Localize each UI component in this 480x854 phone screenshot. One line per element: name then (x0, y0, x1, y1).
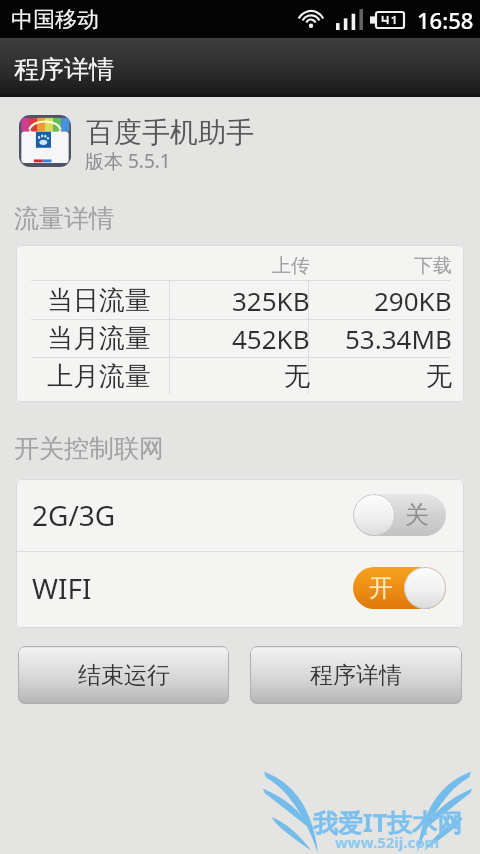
staticText: 上传 (272, 254, 310, 278)
staticText: 关 (405, 500, 429, 530)
staticText: 452KB (232, 321, 310, 356)
button[interactable]: 百度手机助手 (0, 105, 480, 179)
staticText: WIFI (32, 569, 92, 607)
staticText: 290KB (374, 283, 452, 318)
button[interactable]: 当日流量 (16, 281, 464, 319)
staticText: 程序详情 (14, 54, 114, 85)
other: Battery 41 percent (370, 11, 404, 29)
staticText: 无 (426, 360, 452, 393)
button[interactable]: 程序详情 (250, 646, 462, 704)
button[interactable]: WIFI switch on (353, 567, 446, 609)
other: Wi-Fi signal (298, 8, 324, 29)
staticText: 百度手机助手 (86, 115, 254, 150)
staticText: 程序详情 (310, 661, 402, 690)
button[interactable]: 2G/3G (16, 479, 464, 551)
button[interactable]: 2G/3G switch off (353, 494, 446, 536)
staticText: 中国移动 (11, 6, 99, 34)
staticText: 我爱IT技术网 (313, 805, 463, 839)
button[interactable]: 上月流量 (16, 357, 464, 395)
staticText: 开 (369, 573, 393, 603)
staticText: 2G/3G (32, 496, 116, 534)
staticText: 版本 5.5.1 (85, 148, 171, 174)
staticText: www.52ij.com (335, 832, 440, 852)
staticText: 结束运行 (78, 661, 170, 690)
staticText: 下载 (414, 254, 452, 278)
staticText: 流量详情 (14, 203, 114, 234)
other: Mobile signal strength (336, 9, 362, 30)
staticText: 开关控制联网 (14, 433, 164, 464)
button[interactable]: 结束运行 (18, 646, 229, 704)
staticText: 当日流量 (47, 284, 151, 317)
staticText: 上月流量 (47, 360, 151, 393)
staticText: 53.34MB (345, 321, 452, 356)
staticText: 无 (284, 360, 310, 393)
staticText: 325KB (232, 283, 310, 318)
button[interactable]: 当月流量 (16, 319, 464, 357)
staticText: 当月流量 (47, 322, 151, 355)
staticText: 16:58 (417, 5, 474, 35)
button[interactable]: WIFI (16, 552, 464, 624)
